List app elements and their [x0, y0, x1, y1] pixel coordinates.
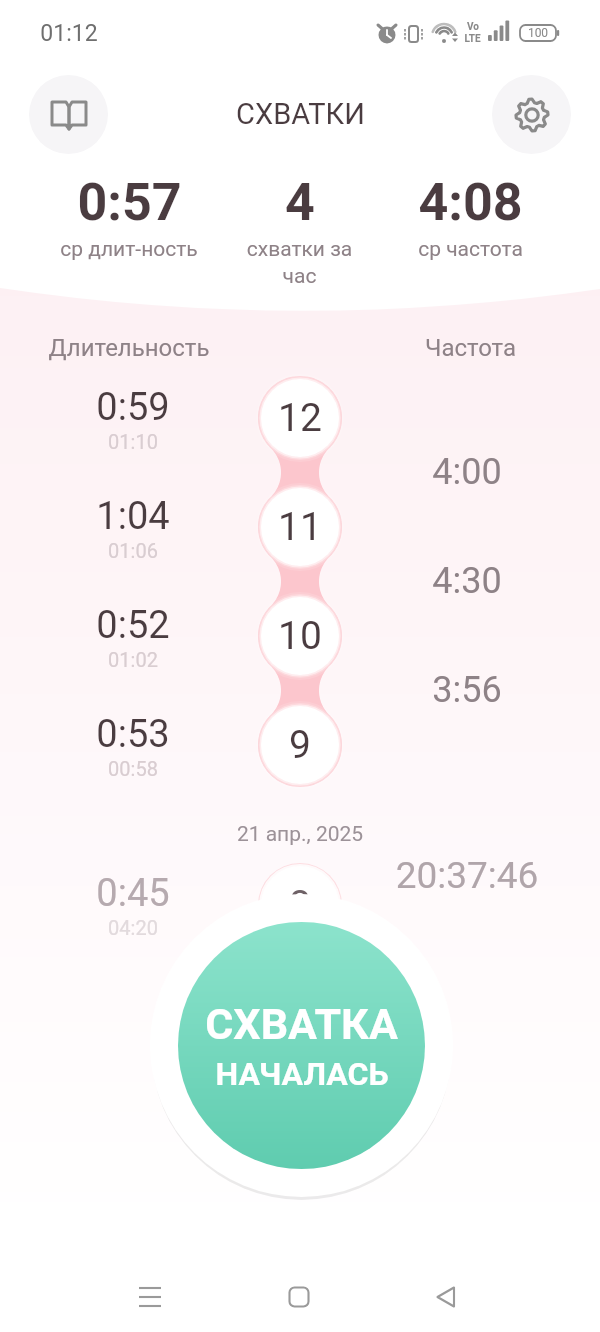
staticText: Частота — [385, 334, 556, 362]
staticText: 20:37:46 — [378, 854, 556, 897]
button[interactable]: 12 — [261, 379, 339, 457]
staticText: Длительность — [44, 334, 214, 362]
staticText: 4:08 — [418, 172, 523, 233]
staticText: 12 — [278, 395, 322, 441]
button[interactable]: Назад — [416, 1267, 476, 1327]
staticText: НАЧАЛАСЬ — [215, 1055, 389, 1093]
button[interactable]: 11 — [261, 488, 339, 566]
staticText: 100 — [524, 26, 552, 40]
staticText: 00:58 — [44, 757, 222, 780]
staticText: 4:30 — [378, 560, 556, 602]
button[interactable]: СХВАТКА — [178, 922, 425, 1169]
staticText: 3:56 — [378, 669, 556, 711]
staticText: схватки за час — [214, 237, 385, 289]
staticText: 01:06 — [44, 539, 222, 562]
button[interactable]: 10 — [261, 597, 339, 675]
staticText: 11 — [278, 504, 322, 550]
button[interactable]: 0:45 — [44, 871, 222, 939]
staticText: 1:04 — [44, 494, 222, 539]
button[interactable]: 0:53 — [44, 712, 222, 780]
button[interactable]: Домой — [269, 1267, 329, 1327]
button[interactable]: 0:52 — [44, 603, 222, 671]
staticText: 0:45 — [44, 871, 222, 916]
staticText: 10 — [278, 613, 322, 659]
staticText: 0:59 — [44, 385, 222, 430]
staticText: ср частота — [385, 237, 556, 262]
staticText: 0:52 — [44, 603, 222, 648]
staticText: 01:10 — [44, 430, 222, 453]
button[interactable]: Недавние — [120, 1267, 180, 1327]
staticText: 8 — [289, 882, 311, 928]
staticText: Vo — [467, 21, 479, 33]
button[interactable]: 9 — [261, 706, 339, 784]
button[interactable]: Справка — [29, 75, 108, 154]
staticText: 9 — [289, 722, 311, 768]
button[interactable]: 1:04 — [44, 494, 222, 562]
button[interactable]: 0:59 — [44, 385, 222, 453]
staticText: 01:12 — [40, 20, 98, 47]
staticText: ср длит-ность — [44, 237, 214, 262]
staticText: 0:57 — [77, 172, 182, 233]
button[interactable]: Настройки — [492, 75, 571, 154]
staticText: 4 — [285, 172, 315, 233]
staticText: 01:02 — [44, 648, 222, 671]
staticText: 04:20 — [44, 916, 222, 939]
staticText: СХВАТКА — [205, 999, 398, 1049]
staticText: LTE — [464, 33, 481, 45]
staticText: 0:53 — [44, 712, 222, 757]
staticText: 4:00 — [378, 451, 556, 493]
staticText: 21 апр., 2025 — [0, 822, 600, 847]
staticText: СХВАТКИ — [236, 97, 365, 131]
